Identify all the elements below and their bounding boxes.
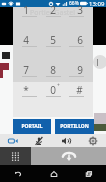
staticText: 2 (50, 3, 56, 17)
button[interactable]: Speaker (52, 134, 79, 147)
button[interactable]: PORTAIL (13, 119, 51, 134)
button[interactable]: 4 (13, 17, 39, 47)
button[interactable]: Settings (79, 134, 106, 147)
button[interactable]: 2 (39, 0, 66, 17)
button[interactable]: 7 (13, 47, 39, 77)
button[interactable]: 0 (39, 77, 66, 97)
button[interactable]: 9 (66, 47, 93, 77)
staticText: 1 (23, 3, 29, 17)
button[interactable]: 1 (13, 0, 39, 17)
button[interactable]: Show dialpad (0, 147, 31, 165)
button[interactable]: 5 (39, 17, 66, 47)
button[interactable]: PORTILLON (55, 119, 94, 134)
staticText: 4 (23, 33, 29, 47)
staticText: 13:09 (89, 0, 105, 7)
staticText: 9 (77, 63, 83, 77)
button[interactable]: Video call (0, 134, 26, 147)
button[interactable]: 3 (66, 0, 93, 17)
staticText: PORTILLON (60, 123, 89, 130)
staticText: Portier Gastel (30, 8, 76, 18)
staticText: + (57, 82, 60, 89)
button[interactable]: * (13, 77, 39, 97)
staticText: 3 (77, 3, 83, 17)
button[interactable]: Mute (26, 134, 52, 147)
button[interactable]: # (66, 77, 93, 97)
staticText: * (23, 83, 29, 97)
button[interactable]: Back (0, 165, 36, 182)
button[interactable]: Recent apps (71, 165, 106, 182)
staticText: 6 (77, 33, 83, 47)
staticText: 7 (23, 63, 29, 77)
button[interactable]: Expand panel (93, 55, 106, 69)
staticText: 0 (50, 83, 56, 97)
button[interactable]: End call (31, 147, 106, 165)
staticText: 66% (69, 0, 79, 7)
button[interactable]: Home (36, 165, 71, 182)
staticText: PORTAIL (21, 123, 43, 130)
staticText: # (76, 83, 83, 97)
button[interactable]: 8 (39, 47, 66, 77)
staticText: 5 (50, 33, 56, 47)
button[interactable]: 6 (66, 17, 93, 47)
staticText: 8 (50, 63, 56, 77)
